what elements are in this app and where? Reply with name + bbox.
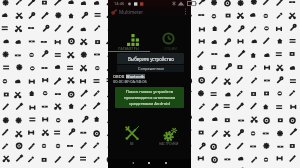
button[interactable]: Home	[144, 158, 154, 168]
button[interactable]: OBDII	[113, 74, 185, 84]
staticText: ПАРАМЕТРЫ	[118, 46, 139, 51]
button[interactable]: Выберите устройство	[117, 53, 184, 64]
staticText: Multimeter	[119, 9, 144, 15]
button[interactable]: Back	[128, 158, 138, 168]
button[interactable]: Recent apps	[161, 158, 171, 168]
staticText: OBDII	[113, 74, 126, 79]
button[interactable]: ОПЦИИ	[149, 16, 191, 52]
staticText: Выберите устройство	[128, 56, 174, 62]
staticText: НАСТРОЙКИ	[159, 142, 179, 146]
button[interactable]: More options	[182, 8, 189, 15]
staticText: Сопряженные	[138, 66, 164, 71]
button[interactable]: ПАРАМЕТРЫ	[108, 16, 149, 52]
staticText: ОПЦИИ	[164, 46, 177, 51]
staticText: 00:0C:BF:0A:5B:06	[113, 79, 147, 84]
button[interactable]: ВЕ	[113, 121, 151, 149]
staticText: Bluetooth	[126, 74, 145, 79]
staticText: Поиск новых устройств производится штатн…	[118, 89, 181, 107]
button[interactable]: НАСТРОЙКИ	[150, 121, 188, 149]
staticText: ВЕ	[130, 142, 134, 146]
staticText: 14:46	[114, 1, 125, 6]
